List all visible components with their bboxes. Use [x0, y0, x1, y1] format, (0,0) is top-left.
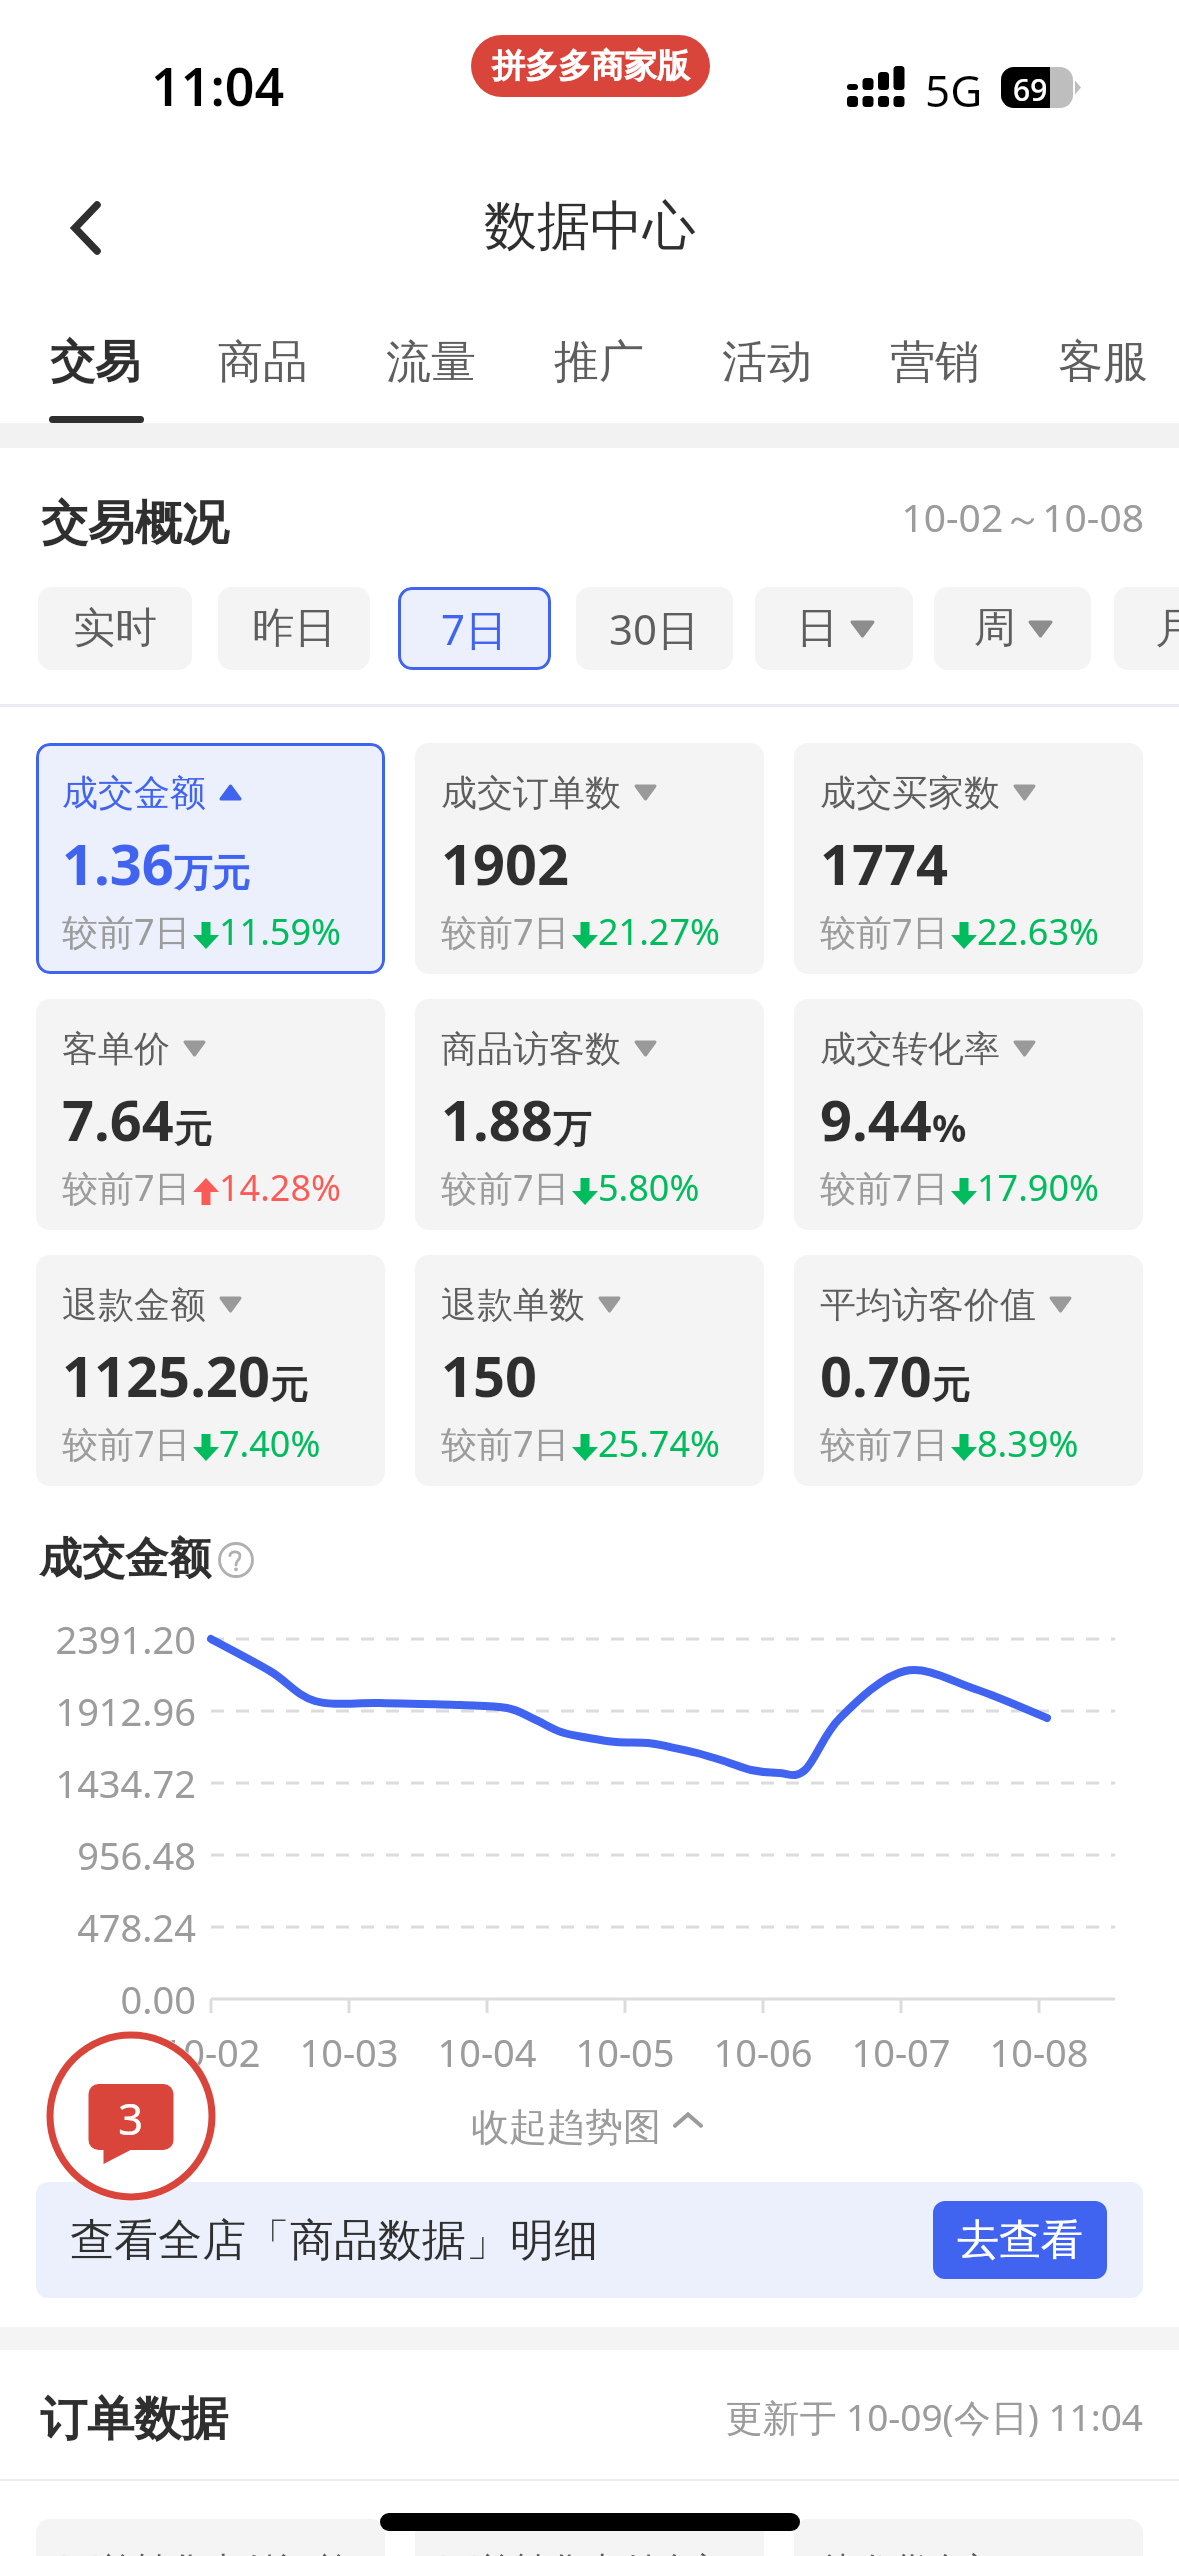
staticText: 实时	[73, 602, 157, 655]
staticText: 元	[270, 1361, 308, 1409]
staticText: 150	[441, 1337, 538, 1413]
button[interactable]: 商品	[218, 334, 386, 430]
staticText: 22.63%	[977, 907, 1099, 956]
button[interactable]: 成交转化率	[794, 999, 1143, 1230]
staticText: 10-07	[831, 2026, 971, 2078]
staticText: 成交转化率	[820, 1026, 1000, 1071]
staticText: 较前7日	[820, 907, 949, 956]
staticText: 昨日	[252, 602, 336, 655]
staticText: 下单转化支付订单	[62, 2548, 350, 2556]
staticText: 成交金额	[62, 770, 206, 815]
staticText: 17.90%	[977, 1163, 1099, 1212]
staticText: 1774	[820, 825, 949, 901]
button[interactable]: 拼多多商家版	[471, 35, 710, 97]
staticText: 10-04	[417, 2026, 557, 2078]
staticText: 69	[1013, 69, 1048, 110]
staticText: 1912.96	[0, 1685, 196, 1737]
staticText: 30日	[609, 600, 700, 657]
staticText: 较前7日	[820, 1163, 949, 1212]
staticText: 去查看	[957, 2214, 1083, 2267]
button[interactable]: 成交金额	[36, 743, 385, 974]
button[interactable]: 成交买家数	[794, 743, 1143, 974]
button[interactable]: 退款单数	[415, 1255, 764, 1486]
staticText: 成交买家数	[820, 770, 1000, 815]
staticText: 交易概况	[41, 494, 229, 553]
button[interactable]: 日	[755, 587, 913, 670]
button[interactable]: 推广	[554, 334, 722, 430]
staticText: 10-05	[555, 2026, 695, 2078]
staticText: 较前7日	[820, 1419, 949, 1468]
button[interactable]: 退款金额	[36, 1255, 385, 1486]
staticText: 流量	[386, 334, 476, 391]
button[interactable]: 流量	[386, 334, 554, 430]
staticText: 5.80%	[598, 1163, 700, 1212]
staticText: 10-08	[969, 2026, 1109, 2078]
button[interactable]: 待发货金额	[794, 2519, 1143, 2556]
staticText: 1902	[441, 825, 570, 901]
staticText: 7.40%	[219, 1419, 321, 1468]
staticText: 查看全店「商品数据」明细	[70, 2213, 598, 2268]
staticText: 万元	[174, 849, 250, 897]
staticText: 25.74%	[598, 1419, 720, 1468]
staticText: 商品访客数	[441, 1026, 621, 1071]
button[interactable]: 收起趋势图	[471, 2103, 703, 2151]
staticText: 待发货金额	[820, 2548, 1000, 2556]
button[interactable]: 周	[934, 587, 1091, 670]
button[interactable]: 实时	[38, 587, 192, 670]
staticText: 0.00	[0, 1973, 196, 2025]
staticText: 1125.20	[62, 1337, 270, 1413]
staticText: 元	[174, 1105, 212, 1153]
button[interactable]: 昨日	[218, 587, 370, 670]
staticText: 更新于 10-09(今日) 11:04	[643, 2391, 1143, 2442]
staticText: 10-06	[693, 2026, 833, 2078]
staticText: 8.39%	[977, 1419, 1079, 1468]
staticText: 10-02	[141, 2026, 281, 2078]
button[interactable]: 客服	[1058, 334, 1179, 430]
staticText: 营销	[890, 334, 980, 391]
staticText: 月	[1155, 602, 1179, 655]
staticText: 0.70	[820, 1337, 932, 1413]
staticText: 21.27%	[598, 907, 720, 956]
staticText: 较前7日	[62, 1419, 191, 1468]
staticText: 日	[796, 602, 838, 655]
button[interactable]: 成交订单数	[415, 743, 764, 974]
button[interactable]: 查看全店「商品数据」明细	[36, 2182, 1143, 2298]
staticText: 3	[118, 2088, 144, 2148]
button[interactable]: 下单转化支付金额	[415, 2519, 764, 2556]
staticText: 退款金额	[62, 1282, 206, 1327]
button[interactable]: 客单价	[36, 999, 385, 1230]
button[interactable]: 下单转化支付订单	[36, 2519, 385, 2556]
staticText: 成交订单数	[441, 770, 621, 815]
staticText: 9.44	[820, 1081, 932, 1157]
staticText: 周	[974, 602, 1016, 655]
staticText: 客服	[1058, 334, 1148, 391]
staticText: 较前7日	[62, 907, 191, 956]
button[interactable]: 活动	[722, 334, 890, 430]
staticText: 5G	[925, 60, 983, 120]
staticText: 退款单数	[441, 1282, 585, 1327]
staticText: 7.64	[62, 1081, 174, 1157]
staticText: 10-02～10-08	[745, 490, 1144, 543]
staticText: 交易	[50, 334, 140, 391]
button[interactable]: 交易	[50, 334, 218, 430]
staticText: 478.24	[0, 1901, 196, 1953]
staticText: 11.59%	[219, 907, 341, 956]
button[interactable]: 商品访客数	[415, 999, 764, 1230]
staticText: 订单数据	[40, 2390, 228, 2449]
staticText: 较前7日	[441, 1163, 570, 1212]
button[interactable]: 去查看	[933, 2201, 1107, 2279]
staticText: 拼多多商家版	[492, 45, 690, 87]
button[interactable]: 营销	[890, 334, 1058, 430]
button[interactable]: Back	[45, 181, 125, 261]
staticText: 成交金额	[39, 1532, 211, 1586]
staticText: 较前7日	[441, 907, 570, 956]
button[interactable]: 7日	[398, 587, 551, 670]
staticText: 数据中心	[484, 193, 696, 260]
button[interactable]: 平均访客价值	[794, 1255, 1143, 1486]
staticText: 2391.20	[0, 1613, 196, 1665]
button[interactable]: Messages	[46, 2031, 216, 2201]
button[interactable]: 月	[1114, 587, 1179, 670]
button[interactable]: 30日	[576, 587, 733, 670]
staticText: 956.48	[0, 1829, 196, 1881]
staticText: 较前7日	[62, 1163, 191, 1212]
